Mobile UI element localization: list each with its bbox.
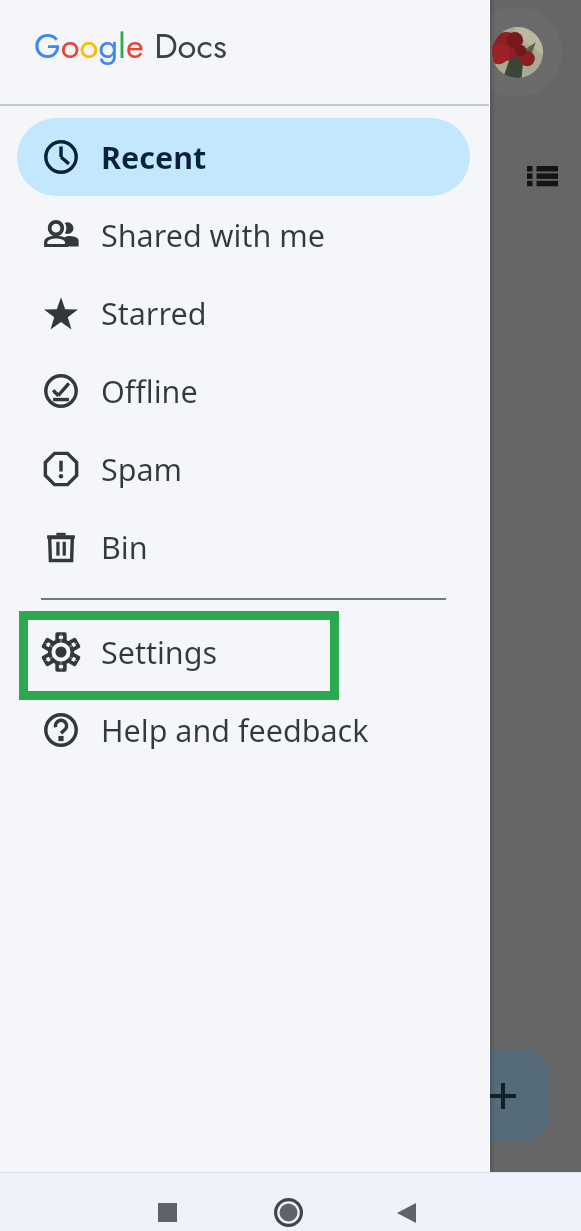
button[interactable]: Starred xyxy=(17,274,470,352)
staticText: Spam xyxy=(101,448,183,490)
button[interactable]: Bin xyxy=(17,508,470,586)
button[interactable]: Spam xyxy=(17,430,470,508)
button[interactable]: Back xyxy=(378,1172,438,1231)
staticText: Starred xyxy=(101,292,207,334)
staticText: Settings xyxy=(101,631,218,673)
button[interactable]: Home xyxy=(258,1172,318,1231)
button[interactable]: Settings xyxy=(17,613,470,691)
button[interactable]: List view xyxy=(520,152,564,196)
button[interactable]: Help and feedback xyxy=(17,691,470,769)
button[interactable]: Account xyxy=(492,27,543,78)
button[interactable]: Recent xyxy=(17,118,470,196)
staticText: Help and feedback xyxy=(101,709,369,751)
button[interactable]: Offline xyxy=(17,352,470,430)
button[interactable]: New document xyxy=(457,1050,549,1142)
staticText: Shared with me xyxy=(101,214,325,256)
button[interactable]: Recents xyxy=(137,1172,197,1231)
button[interactable]: Shared with me xyxy=(17,196,470,274)
staticText: Offline xyxy=(101,370,198,412)
staticText: Google Docs xyxy=(34,21,227,71)
staticText: Bin xyxy=(101,526,148,568)
staticText: Recent xyxy=(101,136,207,178)
